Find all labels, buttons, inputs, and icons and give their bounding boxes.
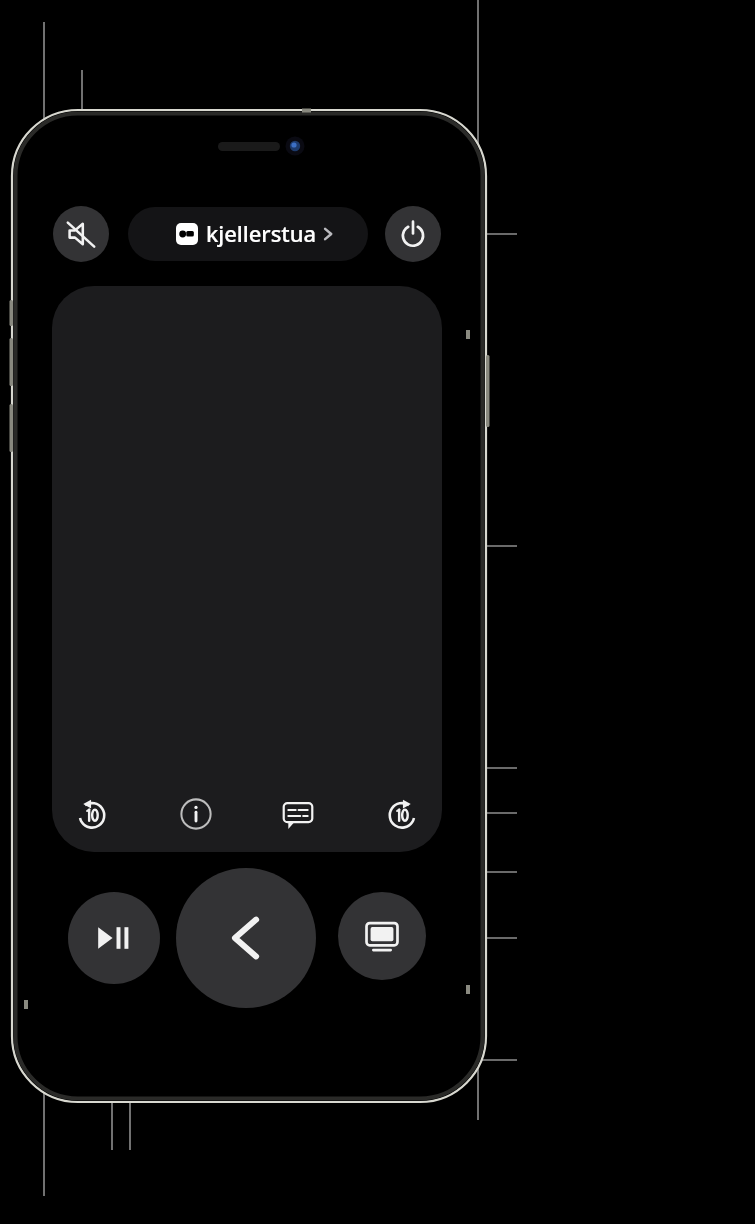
button[interactable]: Skip back 10 seconds [70,792,114,836]
button[interactable]: Power [385,206,441,262]
button[interactable]: Play or pause [68,892,160,984]
button[interactable]: Mute [53,206,109,262]
button[interactable]: TV [338,892,426,980]
button[interactable]: Touch surface [52,286,442,852]
button[interactable]: Back [176,868,316,1008]
staticText: kjellerstua [206,218,317,248]
button[interactable]: kjellerstua [128,207,368,261]
button[interactable]: Captions [276,792,320,836]
button[interactable]: Skip forward 10 seconds [380,792,424,836]
button[interactable]: Info [174,792,218,836]
